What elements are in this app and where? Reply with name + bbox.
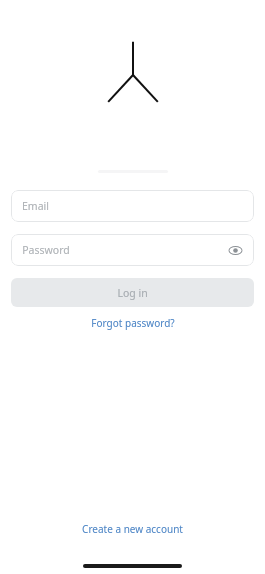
staticText: Create a new account — [82, 522, 183, 536]
button[interactable]: Log in — [11, 278, 254, 307]
staticText: Email — [22, 199, 49, 213]
button[interactable]: Password — [11, 234, 254, 266]
button[interactable]: Show password — [222, 237, 248, 263]
staticText: Password — [22, 243, 70, 257]
staticText: Log in — [117, 286, 148, 300]
button[interactable]: Create a new account — [76, 520, 189, 538]
button[interactable]: Forgot password? — [85, 314, 181, 332]
button[interactable]: Email — [11, 190, 254, 222]
staticText: Forgot password? — [91, 316, 175, 330]
